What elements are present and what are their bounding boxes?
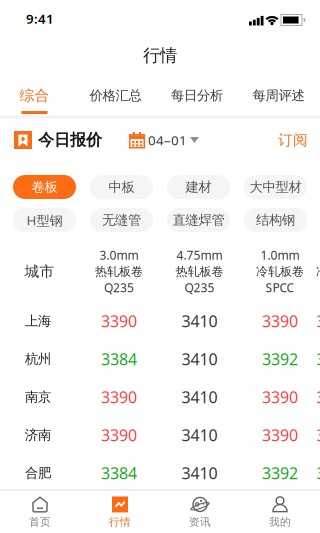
staticText: H型钢 <box>26 211 62 229</box>
staticText: 合肥 <box>25 465 51 481</box>
staticText: 3410 <box>181 424 217 446</box>
button[interactable]: 每周评述 <box>243 80 313 110</box>
button[interactable]: 资讯 <box>165 491 235 533</box>
staticText: 建材 <box>185 179 211 195</box>
staticText: 3384 <box>101 348 137 370</box>
staticText: 资讯 <box>189 515 211 528</box>
staticText: 4.75mm <box>176 247 222 263</box>
staticText: 上海 <box>25 313 51 329</box>
staticText: 无缝管 <box>102 212 141 228</box>
staticText: 济南 <box>25 427 51 443</box>
staticText: 中板 <box>108 179 134 195</box>
staticText: 行情 <box>109 515 131 528</box>
button[interactable]: 首页 <box>5 491 75 533</box>
staticText: 3390 <box>316 386 320 408</box>
staticText: 首页 <box>29 515 51 528</box>
staticText: 城市 <box>24 262 54 280</box>
staticText: 热轧板卷 <box>175 264 223 279</box>
staticText: Q235 <box>104 279 134 295</box>
staticText: 3390 <box>101 310 137 332</box>
button[interactable]: 中板 <box>90 175 153 199</box>
staticText: 每日分析 <box>171 87 223 104</box>
staticText: 3390 <box>262 386 298 408</box>
staticText: 3392 <box>262 348 298 370</box>
staticText: 3390 <box>262 310 298 332</box>
staticText: 04–01 <box>148 131 187 149</box>
staticText: 大中型材 <box>249 179 301 195</box>
button[interactable]: 结构钢 <box>244 208 307 232</box>
staticText: 3390 <box>101 386 137 408</box>
button[interactable]: 大中型材 <box>244 175 307 199</box>
button[interactable]: 卷板 <box>13 175 76 199</box>
staticText: 热轧板卷 <box>95 264 143 279</box>
staticText: 每周评述 <box>252 87 304 104</box>
button[interactable]: 订阅 <box>271 125 315 155</box>
button[interactable]: 无缝管 <box>90 208 153 232</box>
staticText: 冷轧板卷 <box>316 264 320 279</box>
staticText: 今日报价 <box>38 130 102 150</box>
staticText: 3384 <box>101 462 137 484</box>
staticText: 行情 <box>143 45 177 66</box>
button[interactable]: 04–01 <box>129 125 199 155</box>
staticText: 3392 <box>316 462 320 484</box>
staticText: 结构钢 <box>256 212 295 228</box>
button[interactable]: 建材 <box>167 175 230 199</box>
staticText: 3410 <box>181 462 217 484</box>
staticText: SPCC <box>265 279 294 295</box>
button[interactable]: 我的 <box>245 491 315 533</box>
staticText: 价格汇总 <box>89 87 141 104</box>
staticText: 3410 <box>181 310 217 332</box>
staticText: 卷板 <box>31 179 57 195</box>
staticText: 3392 <box>262 462 298 484</box>
staticText: Q235 <box>184 279 214 295</box>
button[interactable]: H型钢 <box>13 208 76 232</box>
button[interactable]: 综合 <box>4 80 64 110</box>
button[interactable]: 每日分析 <box>162 80 232 110</box>
staticText: 9:41 <box>26 10 54 27</box>
staticText: 3390 <box>262 424 298 446</box>
staticText: 3410 <box>181 386 217 408</box>
staticText: 3390 <box>101 424 137 446</box>
staticText: 3.0mm <box>99 247 138 263</box>
button[interactable]: 价格汇总 <box>80 80 150 110</box>
staticText: 订阅 <box>278 131 308 149</box>
staticText: 我的 <box>269 515 291 528</box>
button[interactable]: 直缝焊管 <box>167 208 230 232</box>
staticText: 直缝焊管 <box>172 212 224 228</box>
staticText: 杭州 <box>25 351 51 367</box>
button[interactable]: 行情 <box>85 491 155 533</box>
staticText: 3392 <box>316 348 320 370</box>
staticText: 3390 <box>316 424 320 446</box>
staticText: 1.0mm <box>260 247 299 263</box>
staticText: 南京 <box>25 389 51 405</box>
staticText: 3410 <box>181 348 217 370</box>
staticText: 冷轧板卷 <box>256 264 304 279</box>
staticText: 3390 <box>316 310 320 332</box>
staticText: 综合 <box>19 86 49 104</box>
